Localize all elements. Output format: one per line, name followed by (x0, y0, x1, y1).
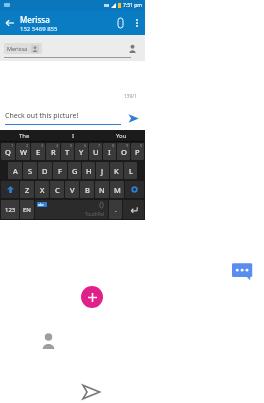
staticText: U (93, 147, 99, 157)
staticText: V (70, 185, 75, 195)
staticText: . (115, 206, 117, 214)
button[interactable]: I (103, 143, 116, 160)
staticText: Z (25, 185, 30, 195)
button[interactable]: V (65, 181, 79, 198)
staticText: S (28, 166, 33, 176)
staticText: D (42, 166, 48, 176)
button[interactable]: B (80, 181, 94, 198)
staticText: 2 (26, 143, 29, 148)
button[interactable]: A (8, 162, 22, 179)
staticText: The (19, 132, 30, 140)
button[interactable]: abc (35, 200, 108, 219)
button[interactable]: Send (121, 106, 145, 130)
staticText: O (121, 147, 127, 157)
staticText: abc (37, 202, 44, 207)
staticText: 5 (70, 143, 73, 148)
button[interactable]: Contact (38, 330, 58, 350)
staticText: 123 (5, 206, 16, 214)
button[interactable]: P (131, 143, 144, 160)
staticText: W (20, 147, 27, 157)
staticText: 152 5469 855 (20, 25, 58, 33)
button[interactable]: More options (129, 15, 145, 31)
button[interactable]: shift (1, 181, 19, 198)
button[interactable]: Z (20, 181, 34, 198)
button[interactable]: C (50, 181, 64, 198)
staticText: 4 (56, 143, 59, 148)
button[interactable]: O (117, 143, 130, 160)
staticText: Y (79, 147, 84, 157)
button[interactable]: L (124, 162, 137, 179)
staticText: 6 (84, 143, 87, 148)
button[interactable]: N (95, 181, 109, 198)
staticText: 3 (41, 143, 44, 148)
button[interactable]: R (46, 143, 60, 160)
staticText: C (55, 185, 60, 195)
staticText: 0 (140, 143, 143, 148)
staticText: H (86, 166, 92, 176)
staticText: 7:51 pm (123, 2, 142, 9)
staticText: Q (5, 147, 11, 157)
button[interactable]: H (82, 162, 95, 179)
button[interactable]: E (31, 143, 45, 160)
staticText: N (99, 185, 105, 195)
button[interactable]: M (110, 181, 124, 198)
staticText: R (51, 147, 56, 157)
button[interactable]: enter (123, 200, 144, 219)
button[interactable]: The (0, 130, 49, 141)
button[interactable]: Merissa (4, 43, 42, 54)
button[interactable]: T (61, 143, 74, 160)
button[interactable]: I (49, 130, 97, 141)
staticText: TouchPal (85, 211, 105, 217)
staticText: B (85, 185, 90, 195)
staticText: M (114, 185, 121, 195)
staticText: P (135, 147, 140, 157)
staticText: 139/1 (0, 93, 137, 100)
staticText: You (116, 132, 127, 140)
button[interactable]: Attach (111, 14, 129, 32)
button[interactable]: K (110, 162, 123, 179)
staticText: L (129, 166, 133, 176)
staticText: J (101, 166, 104, 176)
staticText: F (58, 166, 62, 176)
staticText: X (40, 185, 45, 195)
button[interactable]: S (23, 162, 37, 179)
staticText: Check out this picture! (5, 111, 79, 121)
staticText: A (13, 166, 18, 176)
staticText: 1 (11, 143, 14, 148)
button[interactable]: 123 (1, 200, 19, 219)
button[interactable]: J (96, 162, 109, 179)
staticText: T (65, 147, 70, 157)
staticText: 7 (98, 143, 101, 148)
button[interactable]: D (38, 162, 52, 179)
button[interactable]: Q (1, 143, 15, 160)
staticText: G (72, 166, 78, 176)
button[interactable]: Add contact (125, 41, 139, 55)
staticText: I (72, 132, 75, 140)
staticText: 8 (112, 143, 115, 148)
button[interactable]: Messages (232, 262, 254, 284)
button[interactable]: del (125, 181, 144, 198)
button[interactable]: EN (20, 200, 34, 219)
button[interactable]: . (109, 200, 122, 219)
button[interactable]: Back (0, 13, 20, 33)
button[interactable]: X (35, 181, 49, 198)
staticText: Merissa (7, 45, 28, 52)
button[interactable]: W (16, 143, 30, 160)
staticText: I (108, 147, 111, 157)
button[interactable]: You (97, 130, 145, 141)
button[interactable]: G (68, 162, 81, 179)
staticText: K (114, 166, 119, 176)
staticText: EN (23, 206, 31, 214)
staticText: 9 (126, 143, 129, 148)
button[interactable]: Send message (80, 381, 102, 403)
staticText: E (36, 147, 41, 157)
button[interactable]: Y (75, 143, 88, 160)
button[interactable]: U (89, 143, 102, 160)
staticText: Merissa (20, 14, 50, 25)
button[interactable]: New message (81, 286, 103, 308)
button[interactable]: F (53, 162, 67, 179)
